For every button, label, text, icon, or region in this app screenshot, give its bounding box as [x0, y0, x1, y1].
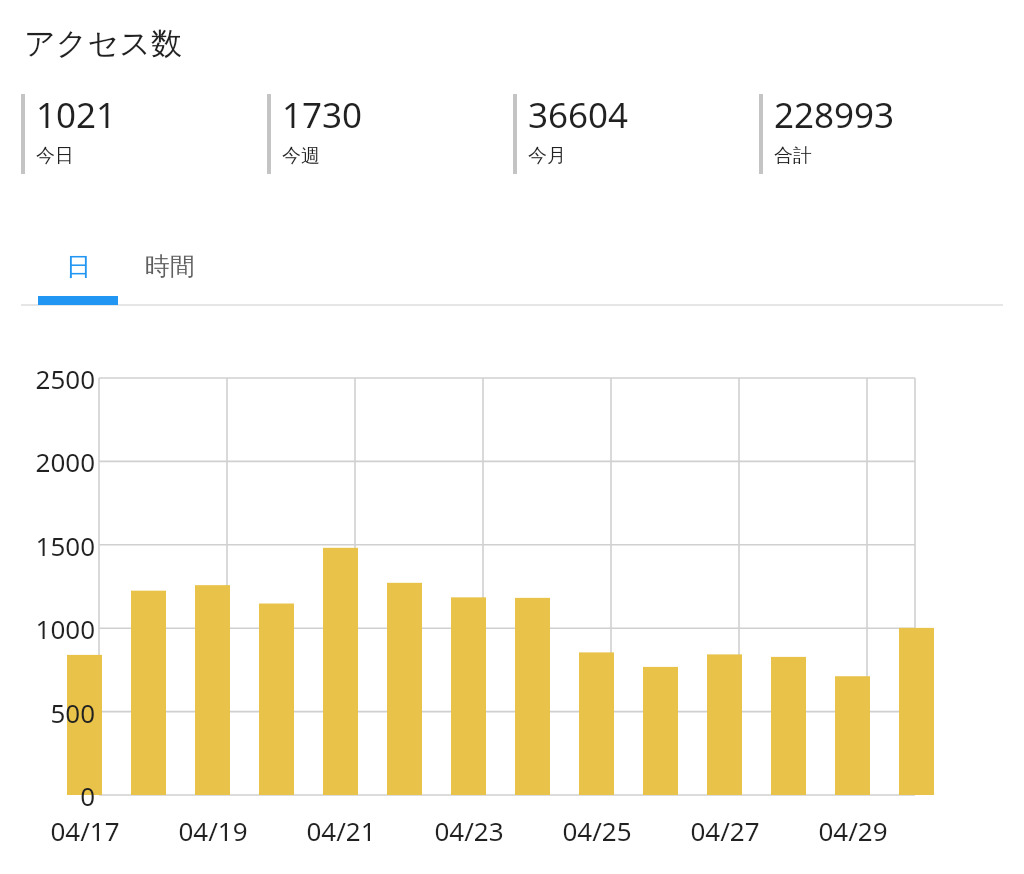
staticText: 2500: [35, 361, 95, 395]
staticText: 04/25: [562, 813, 632, 848]
staticText: 04/17: [50, 813, 120, 848]
staticText: 04/29: [818, 813, 888, 848]
button[interactable]: 1021: [21, 94, 267, 174]
staticText: 228993: [774, 91, 895, 139]
staticText: 36604: [528, 91, 629, 139]
staticText: 2000: [35, 444, 95, 478]
staticText: 合計: [774, 144, 812, 168]
staticText: 1000: [35, 611, 95, 645]
button[interactable]: 1730: [267, 94, 513, 174]
staticText: 今週: [282, 144, 320, 168]
staticText: 04/23: [434, 813, 504, 848]
button[interactable]: 228993: [759, 94, 1003, 174]
staticText: 1500: [35, 528, 95, 562]
staticText: 今日: [36, 144, 74, 168]
staticText: 1021: [36, 91, 117, 139]
staticText: 04/19: [178, 813, 248, 848]
staticText: 日: [66, 251, 91, 282]
staticText: 500: [50, 695, 95, 729]
button[interactable]: 日: [38, 236, 118, 297]
staticText: 0: [80, 778, 95, 812]
staticText: 1730: [282, 91, 363, 139]
staticText: 今月: [528, 144, 566, 168]
staticText: アクセス数: [24, 24, 182, 63]
button[interactable]: 36604: [513, 94, 759, 174]
button[interactable]: 時間: [125, 236, 215, 297]
staticText: 04/21: [306, 813, 376, 848]
staticText: 04/27: [690, 813, 760, 848]
staticText: 時間: [145, 251, 195, 282]
